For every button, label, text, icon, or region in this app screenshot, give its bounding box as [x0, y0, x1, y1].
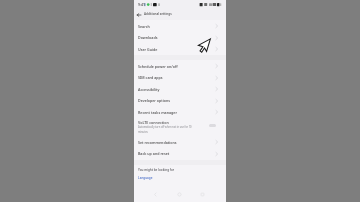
button[interactable]	[134, 72, 226, 84]
staticText: Automatically turn off when not in use f…	[138, 125, 193, 134]
button[interactable]	[134, 95, 226, 107]
button[interactable]	[134, 32, 226, 44]
button[interactable]	[144, 9, 184, 20]
button[interactable]	[134, 43, 226, 55]
button[interactable]	[134, 20, 226, 32]
staticText: Search	[138, 24, 150, 29]
staticText: Language	[138, 176, 153, 180]
staticText: You might be looking for	[138, 168, 175, 172]
staticText: Recent tasks manager	[138, 110, 178, 115]
button[interactable]	[137, 175, 150, 181]
button[interactable]: Back	[134, 9, 143, 20]
button[interactable]	[134, 148, 226, 160]
staticText: Accessibility	[138, 87, 160, 92]
staticText: Additional settings	[144, 12, 172, 16]
staticText: Schedule power on/off	[138, 64, 178, 69]
staticText: 9:41	[138, 2, 145, 7]
staticText: VoLTE connection	[138, 120, 169, 125]
staticText: Downloads	[138, 35, 158, 40]
staticText: User Guide	[138, 47, 158, 52]
button[interactable]	[134, 118, 226, 137]
button[interactable]	[134, 83, 226, 95]
staticText: SIM card apps	[138, 75, 163, 80]
button[interactable]	[134, 60, 226, 72]
staticText: Set recommendations	[138, 140, 177, 145]
staticText: Developer options	[138, 98, 171, 103]
button[interactable]	[134, 106, 226, 118]
staticText: Back up and reset	[138, 151, 170, 156]
button[interactable]	[134, 136, 226, 148]
